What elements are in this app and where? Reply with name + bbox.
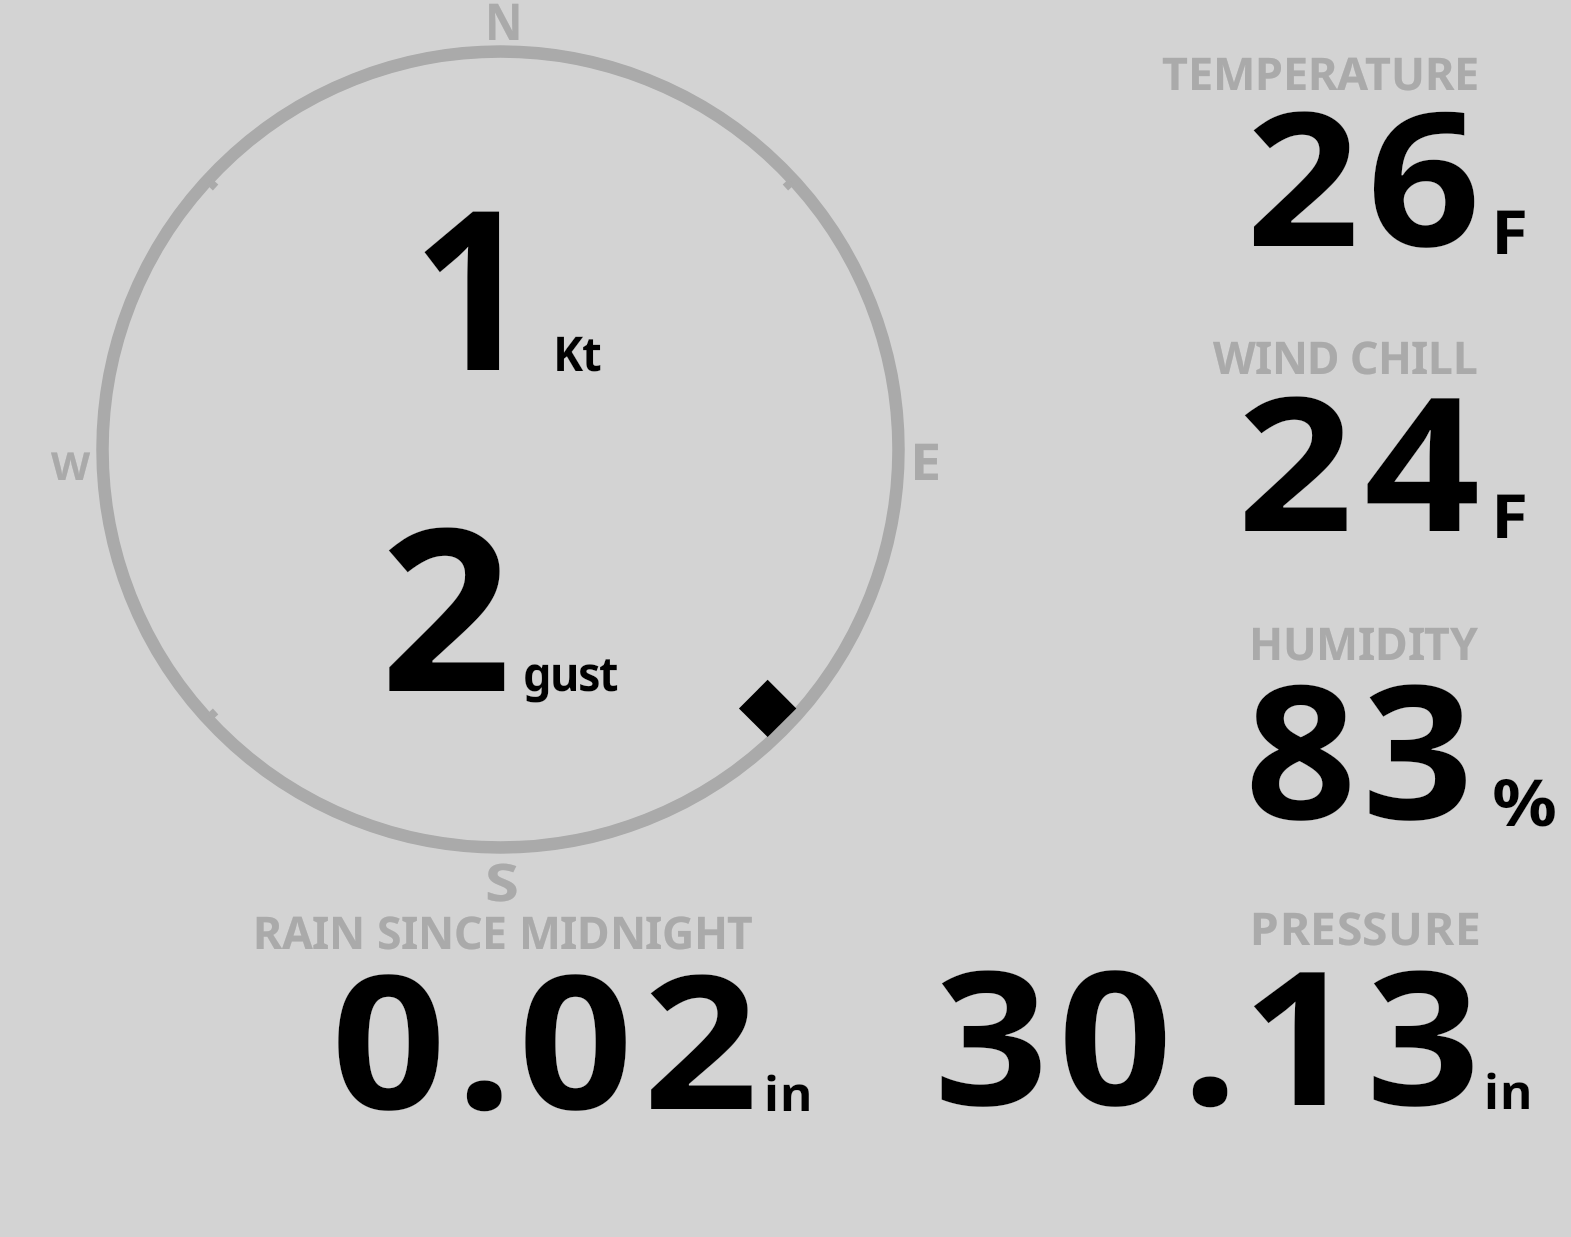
other: Weather dashboard	[0, 0, 1571, 1237]
